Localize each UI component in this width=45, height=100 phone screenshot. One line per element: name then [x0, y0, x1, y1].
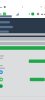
button[interactable]: Tool three: [15, 10, 20, 18]
staticText: ▬ ▬▬: [43, 1, 45, 3]
button[interactable]: Primary action: [29, 59, 45, 63]
button[interactable]: Tool seven: [41, 10, 45, 18]
button[interactable]: Call: [0, 77, 3, 82]
button[interactable]: Location: [0, 70, 45, 74]
button[interactable]: Tool one: [0, 10, 2, 18]
staticText: ⋮: [43, 5, 45, 9]
staticText: ▬▬: [41, 12, 45, 15]
button[interactable]: Field one: [0, 33, 45, 36]
staticText: ←: [0, 5, 2, 9]
staticText: title: [22, 6, 23, 8]
button[interactable]: Message: [0, 84, 45, 88]
button[interactable]: Back: [0, 4, 3, 10]
button[interactable]: Secondary action: [30, 78, 45, 81]
staticText: ⤳: [40, 6, 42, 8]
staticText: ▬▬: [0, 1, 1, 3]
button[interactable]: Tool five: [31, 10, 35, 18]
button[interactable]: Tool four: [28, 10, 31, 18]
button[interactable]: Tool two: [2, 10, 7, 18]
button[interactable]: Open menu: [3, 4, 7, 10]
button[interactable]: Submit: [0, 46, 45, 50]
button[interactable]: More options: [43, 4, 45, 10]
button[interactable]: Field two: [0, 37, 45, 41]
button[interactable]: Tool six: [36, 10, 40, 18]
button[interactable]: Share: [38, 4, 43, 10]
